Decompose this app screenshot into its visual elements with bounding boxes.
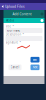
button[interactable]: Save <box>30 57 39 62</box>
staticText: Save <box>32 58 37 61</box>
button[interactable]: Next <box>30 64 39 70</box>
staticText: Cancel <box>10 65 19 69</box>
staticText: Title * <box>5 25 13 28</box>
staticText: Media <box>5 19 13 22</box>
staticText: Tour name <box>6 29 20 32</box>
staticText: Next <box>32 65 37 69</box>
staticText: Signature * <box>5 41 20 44</box>
button[interactable]: Close <box>40 12 43 15</box>
button[interactable]: Cancel <box>8 64 21 70</box>
staticText: Description * <box>5 33 23 36</box>
button[interactable]: Upload Files <box>0 3 46 10</box>
button[interactable]: Add <box>40 19 43 22</box>
staticText: Add Content <box>12 12 31 16</box>
staticText: Upload Files <box>5 4 25 9</box>
